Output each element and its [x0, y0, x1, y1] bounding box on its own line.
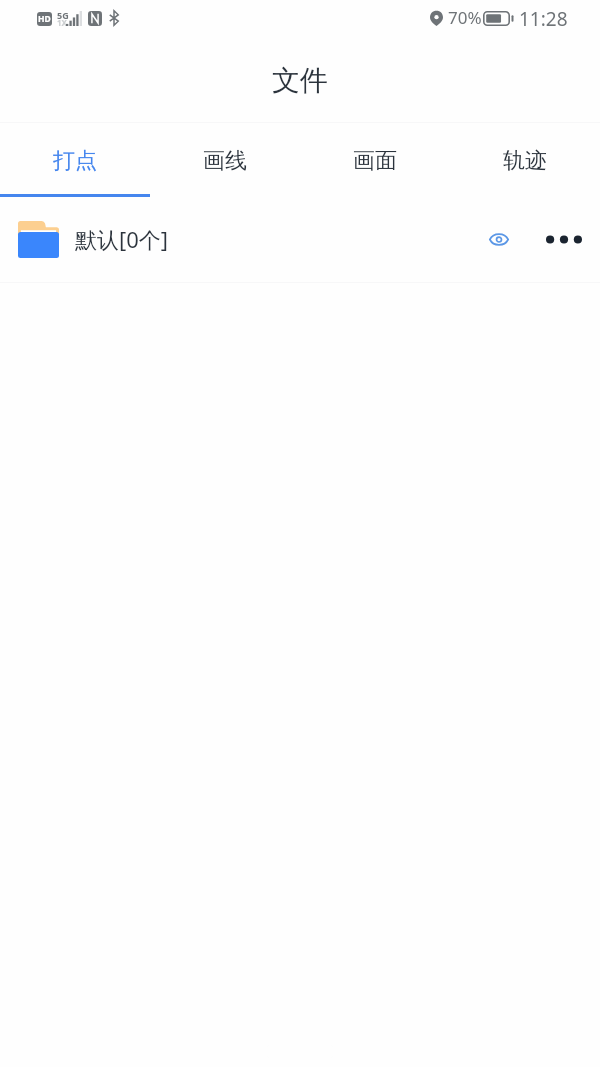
button[interactable]: Preview: [475, 215, 523, 263]
staticText: 70%: [448, 6, 482, 29]
button[interactable]: 画线: [150, 123, 300, 194]
staticText: 5G: [57, 9, 69, 21]
button[interactable]: 默认[0个]: [0, 197, 600, 282]
button[interactable]: 轨迹: [450, 123, 600, 194]
staticText: 画面: [353, 147, 397, 175]
button[interactable]: 画面: [300, 123, 450, 194]
staticText: 画线: [203, 147, 247, 175]
staticText: 默认[0个]: [75, 224, 169, 254]
button[interactable]: More options: [540, 215, 588, 263]
staticText: 文件: [272, 63, 328, 98]
staticText: 11:28: [519, 6, 568, 32]
staticText: 轨迹: [503, 147, 547, 175]
staticText: 打点: [53, 147, 97, 175]
staticText: HD: [38, 13, 51, 25]
button[interactable]: 打点: [0, 123, 150, 194]
staticText: 1X: [57, 17, 67, 28]
